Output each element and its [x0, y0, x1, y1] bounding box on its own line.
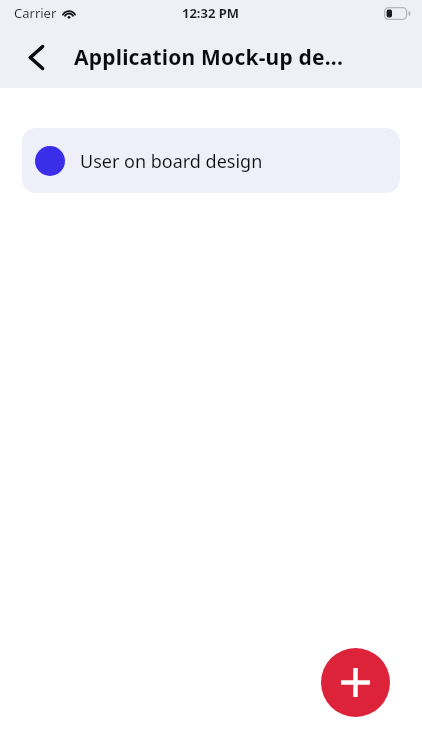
button[interactable]: Add — [321, 648, 390, 717]
button[interactable]: Back — [14, 35, 58, 79]
staticText: User on board design — [80, 149, 263, 174]
staticText: Application Mock-up de... — [74, 43, 344, 72]
staticText: Carrier — [14, 4, 57, 22]
button[interactable]: User on board design — [22, 128, 400, 193]
staticText: 12:32 PM — [182, 4, 240, 22]
